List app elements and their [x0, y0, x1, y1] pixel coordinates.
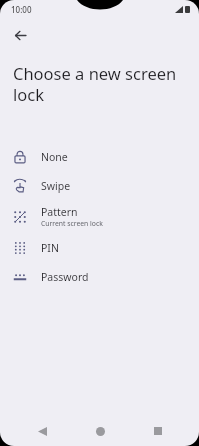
staticText: Choose a new screen lock — [13, 62, 185, 106]
staticText: None — [41, 150, 68, 164]
staticText: PIN — [41, 241, 59, 255]
button[interactable]: Password — [0, 262, 199, 291]
button[interactable]: PIN — [0, 233, 199, 262]
button[interactable]: None — [0, 142, 199, 171]
staticText: Pattern — [41, 205, 78, 219]
button[interactable]: Back — [5, 20, 35, 50]
button[interactable]: Recent apps — [146, 419, 170, 443]
staticText: 10:00 — [11, 4, 32, 15]
staticText: Password — [41, 270, 89, 284]
button[interactable]: Back — [30, 419, 54, 443]
staticText: Swipe — [41, 179, 71, 193]
staticText: Current screen lock — [41, 219, 103, 228]
button[interactable]: Home — [88, 419, 112, 443]
button[interactable]: Swipe — [0, 171, 199, 200]
button[interactable]: Pattern — [0, 200, 199, 233]
